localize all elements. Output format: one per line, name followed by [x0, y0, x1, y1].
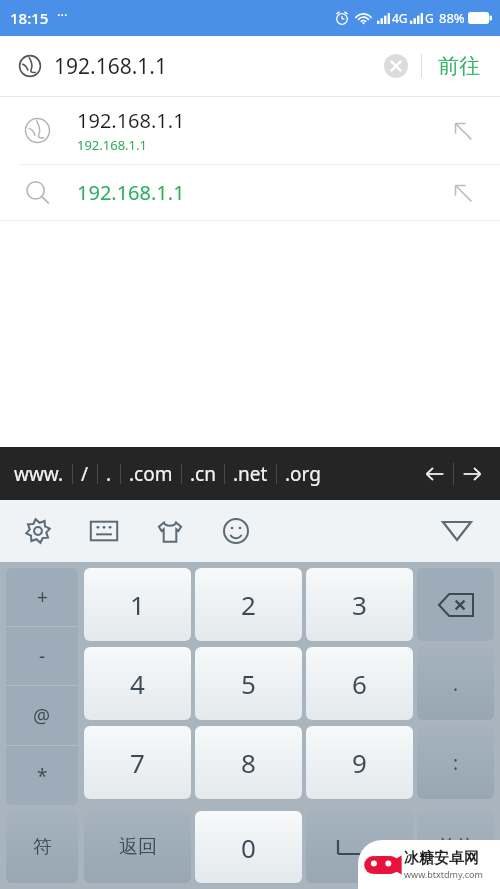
- button[interactable]: Space: [306, 811, 413, 883]
- staticText: .: [453, 671, 459, 697]
- button[interactable]: 6: [306, 647, 413, 720]
- button[interactable]: 5: [195, 647, 302, 720]
- button[interactable]: 8: [195, 726, 302, 799]
- staticText: /: [81, 461, 89, 487]
- staticText: +: [37, 584, 48, 610]
- button[interactable]: 3: [306, 568, 413, 641]
- button[interactable]: Hide keyboard: [434, 508, 480, 554]
- button[interactable]: www.: [6, 451, 72, 497]
- staticText: .com: [129, 461, 173, 487]
- button[interactable]: 7: [84, 726, 191, 799]
- button[interactable]: 1: [84, 568, 191, 641]
- button[interactable]: Backspace: [417, 568, 494, 641]
- button[interactable]: Settings: [16, 509, 60, 553]
- button[interactable]: 192.168.1.1: [0, 165, 500, 220]
- staticText: :: [453, 750, 459, 776]
- button[interactable]: 前往: [432, 45, 486, 87]
- button[interactable]: +: [6, 568, 78, 626]
- button[interactable]: 9: [306, 726, 413, 799]
- staticText: 2: [241, 587, 256, 622]
- button[interactable]: Fill suggestion: [446, 114, 480, 148]
- button[interactable]: /: [73, 451, 97, 497]
- staticText: *: [37, 763, 48, 789]
- button[interactable]: .cn: [182, 451, 224, 497]
- button[interactable]: Keyboard: [82, 509, 126, 553]
- button[interactable]: .org: [277, 451, 329, 497]
- staticText: 192.168.1.1: [77, 179, 185, 206]
- staticText: .: [106, 461, 112, 487]
- button[interactable]: 符: [6, 811, 78, 883]
- staticText: 9: [352, 745, 367, 780]
- staticText: 4: [130, 666, 145, 701]
- staticText: 6: [352, 666, 367, 701]
- button[interactable]: .: [98, 451, 120, 497]
- staticText: ···: [57, 6, 68, 24]
- staticText: 192.168.1.1: [77, 107, 185, 134]
- button[interactable]: 0: [195, 811, 302, 883]
- button[interactable]: @: [6, 686, 78, 745]
- staticText: 4G: [392, 10, 408, 26]
- button[interactable]: .com: [121, 451, 181, 497]
- staticText: .net: [233, 461, 268, 487]
- staticText: 192.168.1.1: [54, 52, 167, 81]
- staticText: 3: [352, 587, 367, 622]
- staticText: .org: [285, 461, 321, 487]
- button[interactable]: 返回: [84, 811, 191, 883]
- button[interactable]: 2: [195, 568, 302, 641]
- button[interactable]: Next: [454, 456, 490, 492]
- staticText: 0: [241, 830, 256, 865]
- button[interactable]: .: [417, 647, 494, 720]
- staticText: 88%: [439, 9, 465, 27]
- staticText: 返回: [119, 835, 157, 859]
- staticText: 18:15: [10, 8, 49, 28]
- staticText: 8: [241, 745, 256, 780]
- staticText: www.btxtdmy.com: [404, 868, 483, 880]
- button[interactable]: Clear: [379, 49, 413, 83]
- staticText: 符: [33, 835, 52, 859]
- button[interactable]: 4: [84, 647, 191, 720]
- staticText: 1: [130, 587, 145, 622]
- staticText: -: [39, 643, 46, 669]
- staticText: www.: [14, 461, 64, 487]
- staticText: 冰糖安卓网: [404, 849, 479, 868]
- button[interactable]: .net: [225, 451, 276, 497]
- button[interactable]: *: [6, 746, 78, 805]
- button[interactable]: Fill suggestion: [446, 176, 480, 210]
- staticText: G: [425, 10, 434, 26]
- button[interactable]: Emoji: [214, 509, 258, 553]
- staticText: @: [33, 703, 51, 729]
- staticText: 7: [130, 745, 145, 780]
- button[interactable]: 192.168.1.1: [0, 97, 500, 164]
- staticText: .cn: [190, 461, 216, 487]
- staticText: 前往: [438, 53, 480, 79]
- staticText: 192.168.1.1: [77, 136, 147, 154]
- button[interactable]: Theme: [148, 509, 192, 553]
- button[interactable]: :: [417, 726, 494, 799]
- button[interactable]: 前往: [417, 811, 494, 883]
- button[interactable]: Previous: [417, 456, 453, 492]
- staticText: 前往: [437, 835, 475, 859]
- staticText: 5: [241, 666, 256, 701]
- button[interactable]: -: [6, 627, 78, 685]
